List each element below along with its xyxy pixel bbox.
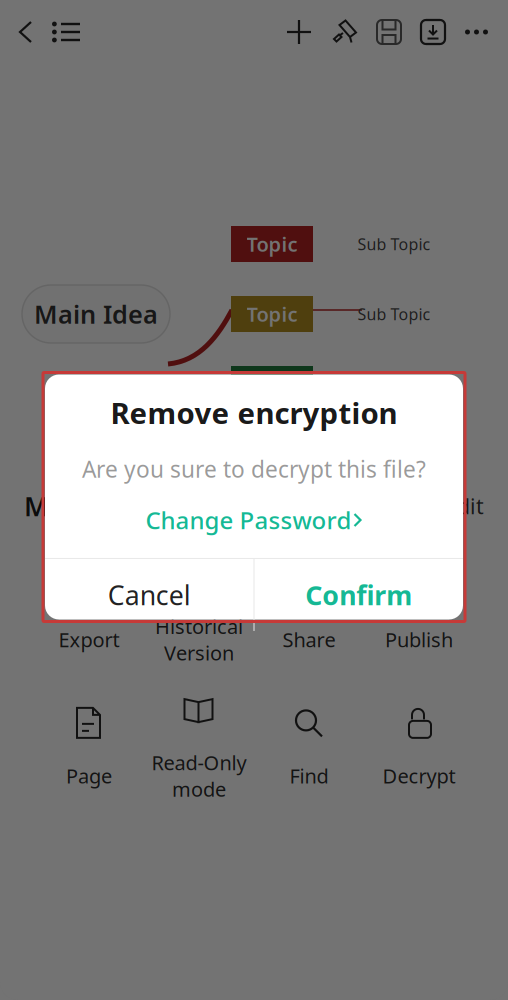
button[interactable]: Decrypt bbox=[364, 691, 474, 789]
button[interactable]: Cancel bbox=[45, 559, 253, 631]
staticText: Historical bbox=[155, 613, 243, 640]
button[interactable]: Change Password bbox=[145, 484, 362, 558]
staticText: Topic bbox=[246, 301, 297, 327]
button[interactable]: Historical bbox=[144, 542, 254, 666]
button[interactable]: Download bbox=[411, 20, 455, 44]
staticText: Cancel bbox=[108, 577, 191, 613]
button[interactable]: More bbox=[455, 29, 498, 34]
button[interactable]: Export bbox=[34, 555, 144, 653]
button[interactable]: Style bbox=[321, 19, 367, 45]
button[interactable]: Outline bbox=[42, 22, 90, 42]
button[interactable]: Save bbox=[367, 20, 411, 44]
button[interactable]: Confirm bbox=[254, 559, 463, 631]
staticText: Decrypt bbox=[382, 762, 455, 789]
staticText: Change Password bbox=[145, 504, 351, 536]
staticText: Mind Map bbox=[24, 488, 156, 524]
staticText: mode bbox=[172, 776, 226, 802]
button[interactable]: Read-Only bbox=[144, 678, 254, 802]
staticText: Find bbox=[289, 762, 328, 789]
staticText: Publish bbox=[385, 626, 453, 653]
button[interactable]: Publish bbox=[364, 555, 474, 653]
button[interactable]: Find bbox=[254, 691, 364, 789]
staticText: Sub Topic bbox=[357, 303, 430, 325]
button[interactable]: Add bbox=[277, 20, 321, 44]
staticText: Remove encryption bbox=[110, 393, 397, 432]
staticText: Confirm bbox=[305, 577, 412, 613]
staticText: Version bbox=[164, 640, 234, 666]
staticText: edit bbox=[445, 492, 484, 520]
button[interactable]: Page bbox=[34, 691, 144, 789]
staticText: Topic bbox=[246, 371, 297, 397]
staticText: Sub Topic bbox=[357, 233, 430, 255]
staticText: Topic bbox=[246, 231, 297, 257]
button[interactable]: Back bbox=[10, 19, 42, 45]
staticText: Share bbox=[282, 626, 335, 653]
staticText: Export bbox=[58, 626, 119, 653]
staticText: Main Idea bbox=[34, 297, 158, 331]
button[interactable]: Share bbox=[254, 555, 364, 653]
staticText: Page bbox=[66, 762, 112, 789]
staticText: Are you sure to decrypt this file? bbox=[82, 454, 426, 484]
staticText: Read-Only bbox=[151, 749, 246, 776]
